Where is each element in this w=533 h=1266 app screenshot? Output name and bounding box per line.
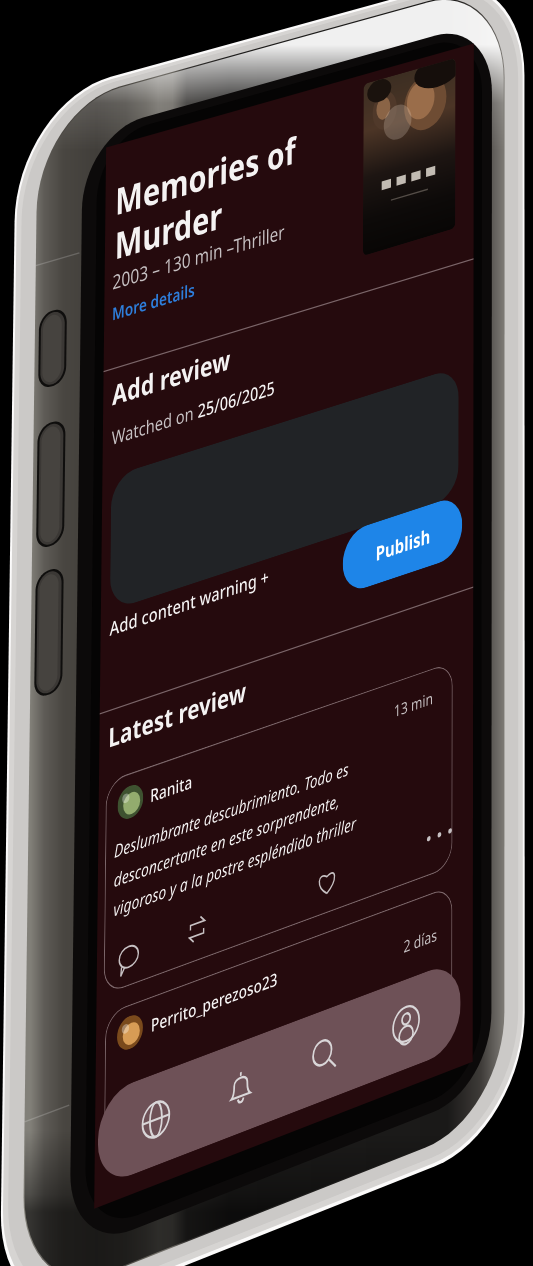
- staticText: Watched on: [9, 228, 97, 248]
- button[interactable]: Like: [223, 643, 247, 667]
- staticText: Ranita: [52, 526, 95, 545]
- staticText: Memories of Murder: [10, 26, 198, 103]
- staticText: 13 min: [305, 527, 347, 545]
- button[interactable]: Notifications: [119, 765, 175, 821]
- staticText: Latest review: [9, 464, 150, 493]
- staticText: Deslumbrante descubrimiento. Todo es des…: [16, 560, 266, 625]
- button[interactable]: Add content warning +: [7, 379, 175, 403]
- button[interactable]: 13 min: [7, 512, 368, 680]
- button[interactable]: Profile: [291, 765, 347, 821]
- staticText: Add review: [9, 188, 131, 218]
- button[interactable]: More details: [6, 126, 95, 149]
- button[interactable]: Publish: [250, 376, 378, 427]
- staticText: 2003 – 130 min –Thriller: [8, 101, 187, 123]
- staticText: Add content warning +: [9, 381, 173, 401]
- button[interactable]: Search: [205, 765, 261, 821]
- button[interactable]: Discover: [33, 765, 89, 821]
- staticText: 25/06/2025: [97, 228, 178, 248]
- staticText: Perrito_perezoso23: [55, 708, 185, 727]
- button[interactable]: Comment: [20, 647, 44, 671]
- button[interactable]: Repost: [89, 643, 113, 667]
- staticText: More details: [8, 128, 93, 147]
- button[interactable]: [9, 269, 374, 377]
- button[interactable]: 2 días: [9, 695, 368, 815]
- staticText: Publish: [285, 391, 344, 413]
